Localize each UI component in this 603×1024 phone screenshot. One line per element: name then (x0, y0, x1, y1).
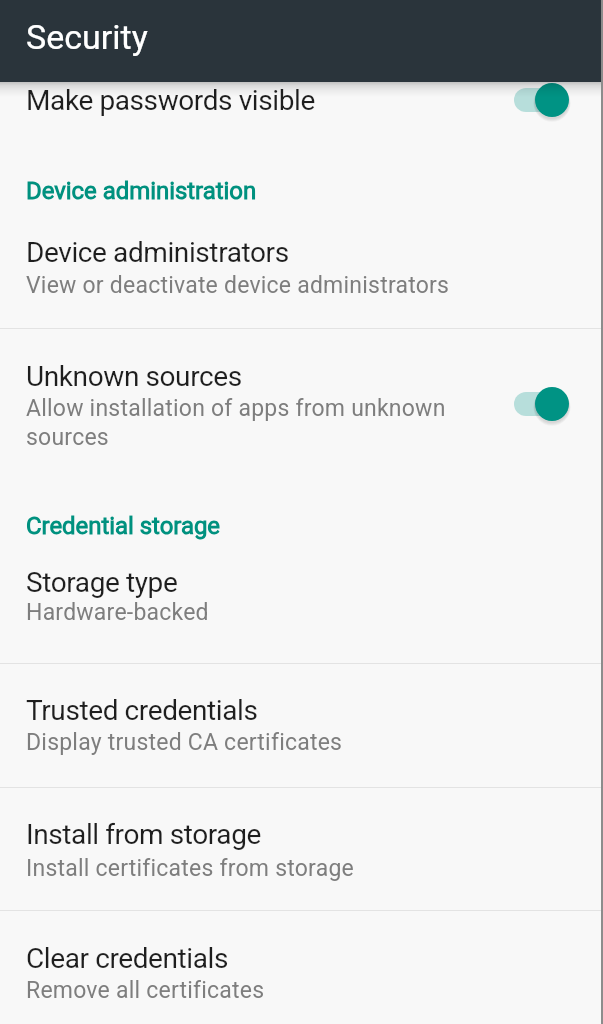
staticText: Display trusted CA certificates (26, 729, 343, 756)
staticText: View or deactivate device administrators (26, 272, 450, 299)
button[interactable]: Make passwords visible (0, 82, 603, 120)
staticText: Make passwords visible (26, 84, 315, 117)
staticText: Allow installation of apps from unknown … (26, 395, 446, 451)
button[interactable]: Toggle Unknown sources (514, 387, 569, 425)
staticText: Install certificates from storage (26, 855, 354, 882)
staticText: Hardware-backed (26, 599, 209, 626)
staticText: Device administration (26, 177, 257, 205)
button[interactable]: Storage type (0, 540, 603, 626)
staticText: Device administrators (26, 236, 289, 269)
button[interactable]: Toggle Make passwords visible (514, 83, 569, 121)
staticText: Security (26, 17, 148, 57)
button[interactable]: Device administrators (0, 205, 603, 299)
staticText: Install from storage (26, 818, 261, 851)
staticText: Remove all certificates (26, 977, 265, 1004)
button[interactable]: Clear credentials (0, 911, 603, 1004)
button[interactable]: Install from storage (0, 788, 603, 882)
staticText: Storage type (26, 566, 178, 599)
button[interactable]: Unknown sources (0, 329, 603, 451)
button[interactable]: Trusted credentials (0, 664, 603, 756)
staticText: Trusted credentials (26, 694, 258, 727)
staticText: Credential storage (26, 512, 221, 540)
staticText: Unknown sources (26, 360, 242, 393)
staticText: Clear credentials (26, 942, 229, 975)
